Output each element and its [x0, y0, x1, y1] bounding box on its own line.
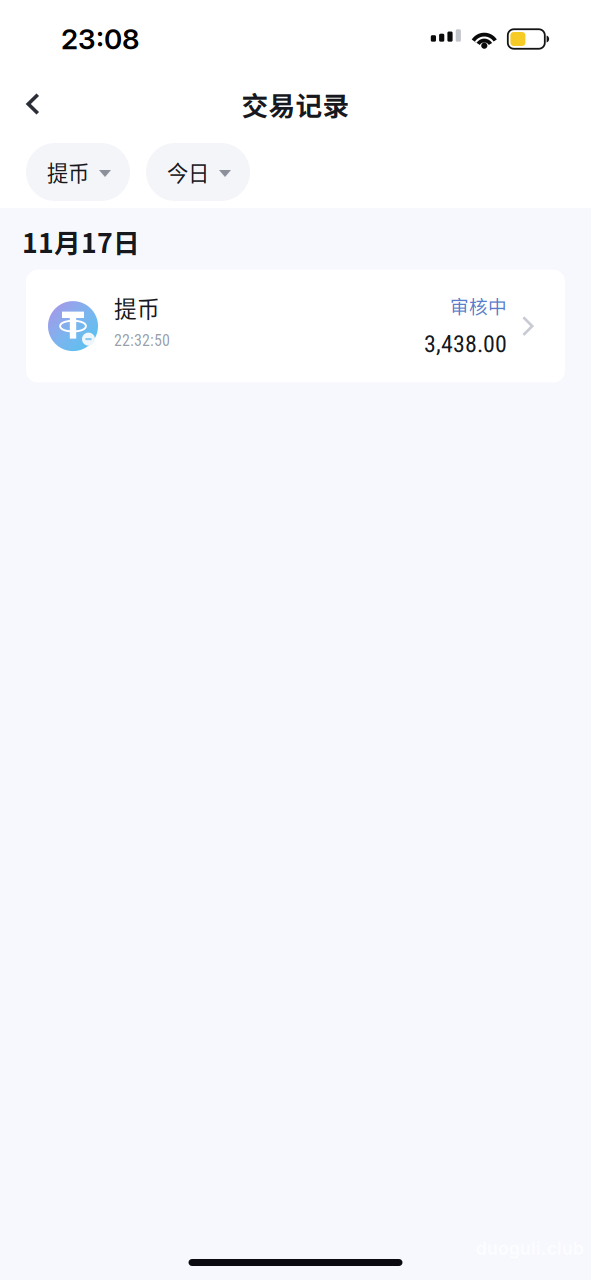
button[interactable]: 提币: [26, 143, 130, 201]
staticText: 提币: [47, 157, 89, 187]
staticText: 11月17日: [22, 222, 140, 261]
staticText: 提币: [114, 291, 160, 324]
staticText: 今日: [167, 157, 209, 187]
staticText: 审核中: [450, 292, 507, 319]
staticText: 23:08: [61, 22, 140, 56]
staticText: 22:32:50: [114, 331, 170, 350]
button[interactable]: 今日: [146, 143, 250, 201]
button[interactable]: Back: [10, 82, 56, 126]
staticText: 3,438.00: [424, 330, 507, 358]
button[interactable]: 提币: [26, 270, 565, 383]
staticText: 交易记录: [241, 85, 349, 123]
